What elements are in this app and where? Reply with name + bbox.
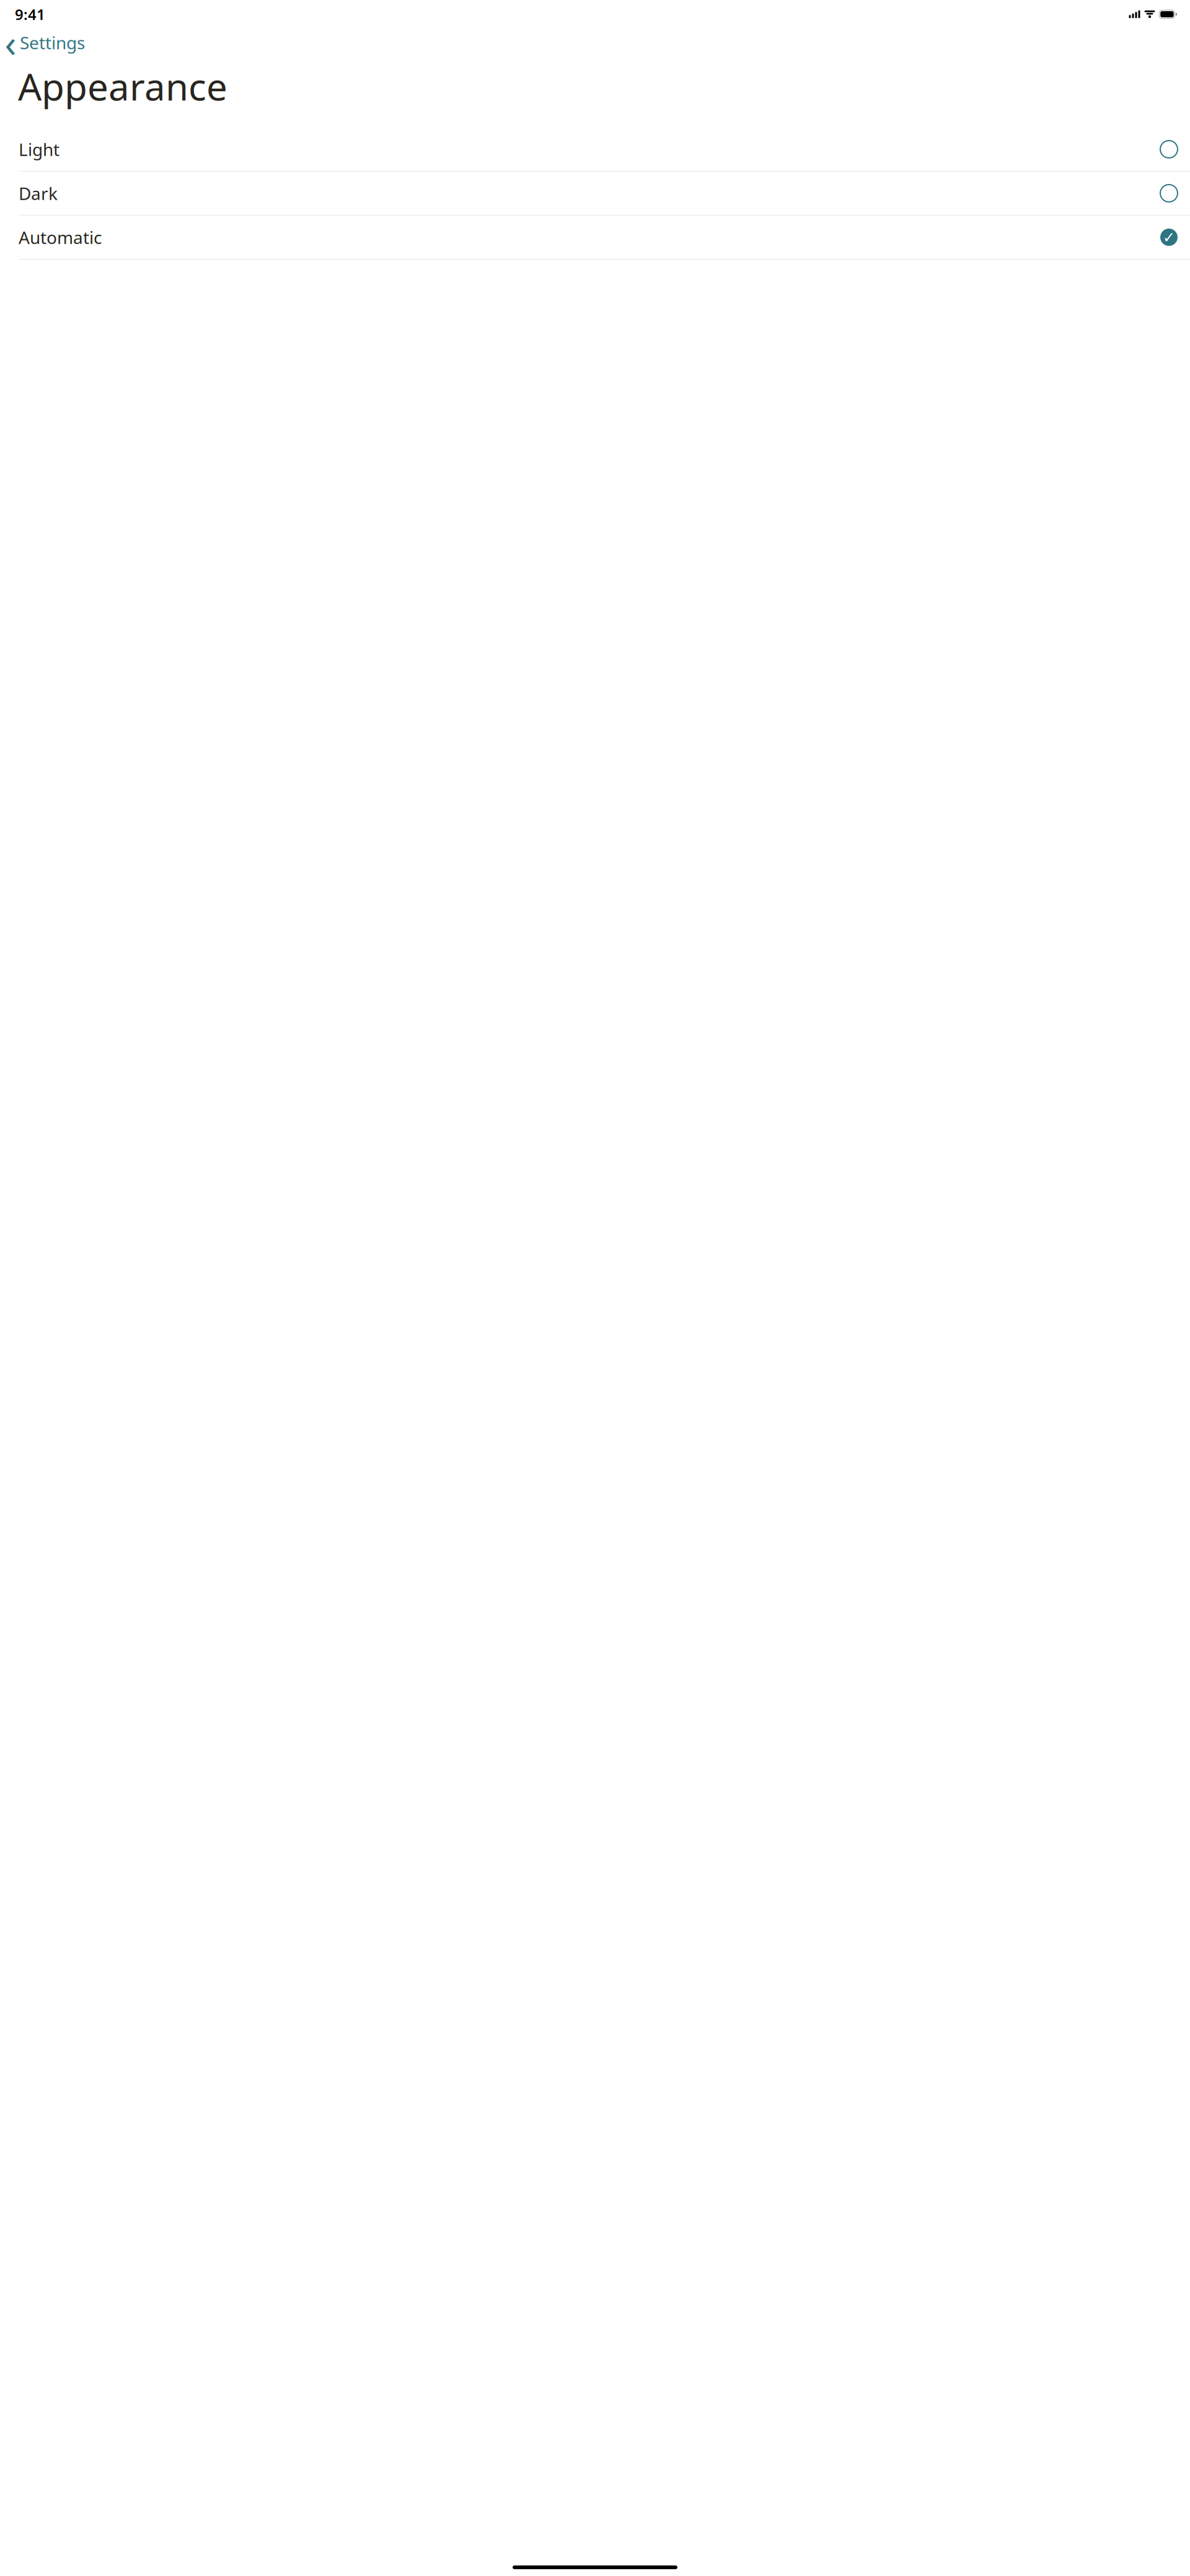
staticText: ‹ — [5, 17, 16, 68]
button[interactable]: Light — [0, 128, 1190, 171]
staticText: ✓ — [1163, 229, 1175, 246]
button[interactable]: Dark — [0, 172, 1190, 215]
staticText: Dark — [19, 182, 58, 205]
staticText: Appearance — [18, 61, 227, 111]
button[interactable]: Automatic — [0, 216, 1190, 259]
button[interactable]: ‹ — [0, 29, 94, 57]
staticText: 9:41 — [15, 4, 45, 24]
staticText: Automatic — [19, 226, 102, 249]
staticText: Light — [19, 138, 59, 161]
staticText: Settings — [20, 31, 85, 54]
